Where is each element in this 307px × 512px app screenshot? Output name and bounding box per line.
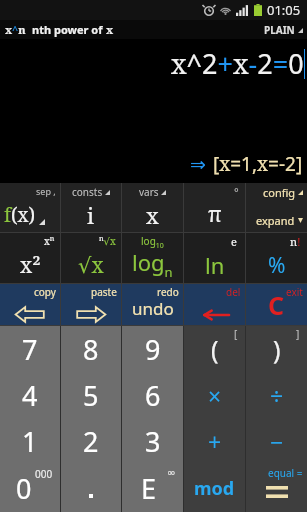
staticText: del: [226, 285, 241, 299]
staticText: nth power of: [32, 22, 106, 37]
staticText: paste: [91, 285, 117, 299]
button[interactable]: 6: [122, 372, 183, 418]
staticText: xn: [44, 234, 55, 248]
staticText: ∞: [167, 467, 176, 479]
staticText: f(x): [4, 202, 36, 228]
button[interactable]: op −: [246, 418, 307, 465]
button[interactable]: 8: [61, 326, 121, 372]
staticText: expand: [256, 213, 295, 228]
staticText: √x: [78, 251, 104, 280]
button[interactable]: op +: [184, 418, 245, 465]
button[interactable]: consts i: [61, 183, 121, 232]
staticText: ): [273, 332, 281, 366]
button[interactable]: vars x: [122, 183, 183, 232]
staticText: 9: [145, 331, 161, 368]
button[interactable]: op ×: [184, 372, 245, 418]
staticText: 5: [83, 377, 99, 414]
staticText: π: [208, 200, 222, 229]
button[interactable]: 7: [0, 326, 60, 372]
button[interactable]: Paste: [61, 284, 121, 325]
button[interactable]: 4: [0, 372, 60, 418]
staticText: sep ,: [36, 185, 56, 197]
button[interactable]: exponent: [122, 465, 183, 512]
staticText: 000: [35, 467, 53, 481]
staticText: 8: [83, 331, 99, 368]
staticText: x: [146, 200, 159, 230]
button[interactable]: square root: [61, 233, 121, 283]
staticText: 01:05: [267, 1, 301, 19]
staticText: +: [208, 426, 222, 457]
staticText: 4: [22, 377, 38, 414]
staticText: −: [270, 426, 284, 457]
staticText: E: [141, 470, 157, 507]
button[interactable]: pi: [184, 183, 245, 232]
button[interactable]: 3: [122, 418, 183, 465]
staticText: ⇒: [190, 153, 206, 175]
staticText: 1: [22, 423, 38, 460]
staticText: e: [231, 234, 237, 249]
staticText: x^n: [5, 22, 26, 37]
staticText: PLAIN: [264, 23, 295, 37]
button[interactable]: percent: [246, 233, 307, 283]
staticText: logn: [132, 247, 173, 281]
button[interactable]: 5: [61, 372, 121, 418]
staticText: C: [268, 288, 285, 322]
staticText: equal =: [268, 466, 303, 480]
button[interactable]: 0: [0, 465, 60, 512]
button[interactable]: Clear: [246, 284, 307, 325]
button[interactable]: 9: [122, 326, 183, 372]
staticText: 6: [145, 377, 161, 414]
staticText: copy: [34, 285, 56, 299]
staticText: x: [106, 22, 114, 37]
staticText: n√x: [99, 234, 116, 248]
button[interactable]: 2: [61, 418, 121, 465]
staticText: 3: [145, 423, 161, 460]
button[interactable]: log base n: [122, 233, 183, 283]
button[interactable]: Undo: [122, 284, 183, 325]
button[interactable]: decimal point: [61, 465, 121, 512]
staticText: consts: [72, 185, 103, 199]
staticText: i: [87, 200, 95, 230]
button[interactable]: op ): [246, 326, 307, 372]
staticText: ÷: [270, 380, 284, 411]
staticText: 0: [16, 470, 32, 507]
button[interactable]: equals: [246, 465, 307, 512]
button[interactable]: x squared: [0, 233, 60, 283]
staticText: redo: [157, 285, 179, 299]
staticText: vars: [139, 185, 159, 199]
button[interactable]: config expand: [246, 183, 307, 232]
button[interactable]: op (: [184, 326, 245, 372]
staticText: (: [211, 332, 219, 366]
staticText: log10: [141, 234, 164, 250]
staticText: [x=1,x=-2]: [213, 151, 303, 177]
staticText: mod: [194, 476, 235, 501]
staticText: x²: [20, 251, 41, 280]
staticText: x^2+x-2=0: [171, 45, 304, 82]
staticText: ]: [296, 327, 300, 341]
staticText: undo: [132, 297, 174, 320]
staticText: config: [263, 185, 296, 200]
button[interactable]: f(x): [0, 183, 60, 232]
staticText: ln: [205, 250, 225, 280]
button[interactable]: Copy: [0, 284, 60, 325]
button[interactable]: 1: [0, 418, 60, 465]
staticText: [: [234, 327, 238, 341]
staticText: °: [234, 184, 239, 199]
button[interactable]: natural log: [184, 233, 245, 283]
button[interactable]: mod: [184, 465, 245, 512]
staticText: 7: [22, 331, 38, 368]
staticText: 2: [83, 423, 99, 460]
staticText: exit: [286, 285, 303, 299]
staticText: n!: [290, 234, 301, 249]
button[interactable]: Delete: [184, 284, 245, 325]
button[interactable]: op ÷: [246, 372, 307, 418]
staticText: %: [268, 251, 286, 280]
staticText: ×: [208, 380, 222, 411]
button[interactable]: Plain mode: [264, 23, 303, 37]
